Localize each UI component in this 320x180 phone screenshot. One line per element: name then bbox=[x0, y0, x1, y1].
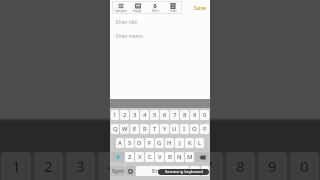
button[interactable]: U bbox=[170, 124, 179, 134]
staticText: M bbox=[187, 153, 193, 161]
button[interactable]: C bbox=[145, 152, 154, 162]
button[interactable]: Scale bbox=[164, 1, 182, 14]
button[interactable]: G bbox=[155, 138, 164, 148]
button[interactable]: T bbox=[150, 124, 159, 134]
staticText: U bbox=[172, 125, 177, 133]
staticText: N bbox=[177, 153, 182, 161]
button[interactable]: Q bbox=[111, 124, 119, 134]
button[interactable]: 1 bbox=[111, 110, 119, 120]
staticText: W bbox=[122, 125, 128, 133]
button[interactable]: S bbox=[125, 138, 134, 148]
button[interactable]: English bbox=[136, 166, 189, 176]
button[interactable]: K bbox=[185, 138, 194, 148]
button[interactable]: 8 bbox=[180, 110, 189, 120]
staticText: English bbox=[152, 167, 173, 175]
staticText: Enter title bbox=[116, 19, 138, 25]
staticText: Image bbox=[133, 9, 142, 13]
button[interactable]: . bbox=[190, 166, 200, 176]
button[interactable]: M bbox=[185, 152, 194, 162]
staticText: R bbox=[143, 125, 147, 133]
button[interactable]: 6 bbox=[160, 110, 169, 120]
staticText: 9 bbox=[193, 111, 197, 119]
button[interactable]: F bbox=[145, 138, 154, 148]
staticText: D bbox=[137, 139, 142, 147]
staticText: F bbox=[148, 139, 152, 147]
button[interactable]: N bbox=[175, 152, 184, 162]
staticText: B bbox=[168, 153, 172, 161]
button[interactable]: 9 bbox=[190, 110, 199, 120]
button[interactable]: B bbox=[165, 152, 174, 162]
staticText: 7 bbox=[173, 111, 177, 119]
staticText: H bbox=[167, 139, 172, 147]
button[interactable]: 5 bbox=[150, 110, 159, 120]
button[interactable]: Y bbox=[160, 124, 169, 134]
staticText: 0 bbox=[203, 111, 207, 119]
staticText: V bbox=[158, 153, 162, 161]
staticText: X bbox=[138, 153, 142, 161]
button[interactable]: Settings bbox=[126, 166, 135, 176]
staticText: Samsung keyboard bbox=[165, 169, 203, 175]
button[interactable]: Image bbox=[129, 1, 146, 14]
button[interactable]: Z bbox=[125, 152, 134, 162]
staticText: Scale bbox=[170, 9, 177, 13]
staticText: S bbox=[128, 139, 132, 147]
button[interactable]: 3 bbox=[130, 110, 139, 120]
button[interactable]: P bbox=[200, 124, 209, 134]
staticText: Save bbox=[194, 4, 207, 11]
button[interactable]: Voice bbox=[146, 1, 164, 14]
staticText: Q bbox=[113, 125, 118, 133]
button[interactable]: X bbox=[135, 152, 144, 162]
staticText: 2 bbox=[123, 111, 127, 119]
button[interactable]: Shift bbox=[111, 152, 124, 162]
staticText: Sym bbox=[112, 167, 124, 175]
button[interactable]: D bbox=[135, 138, 144, 148]
staticText: 4 bbox=[108, 156, 117, 176]
staticText: 7 bbox=[204, 156, 213, 176]
staticText: O bbox=[192, 125, 197, 133]
staticText: P bbox=[203, 125, 207, 133]
staticText: Category bbox=[115, 9, 127, 13]
button[interactable]: H bbox=[165, 138, 174, 148]
staticText: K bbox=[188, 139, 192, 147]
button[interactable]: Enter bbox=[201, 166, 209, 176]
button[interactable]: I bbox=[180, 124, 189, 134]
staticText: 5 bbox=[153, 111, 157, 119]
staticText: 8 bbox=[183, 111, 187, 119]
button[interactable]: A bbox=[116, 138, 124, 148]
staticText: 2 bbox=[44, 156, 53, 176]
staticText: 3 bbox=[76, 156, 85, 176]
staticText: T bbox=[153, 125, 157, 133]
button[interactable]: 2 bbox=[120, 110, 129, 120]
staticText: C bbox=[148, 153, 152, 161]
staticText: 1 bbox=[12, 156, 21, 176]
button[interactable]: Save bbox=[182, 1, 210, 14]
staticText: 3 bbox=[133, 111, 137, 119]
button[interactable]: 0 bbox=[200, 110, 209, 120]
staticText: 9 bbox=[268, 156, 277, 176]
button[interactable]: V bbox=[155, 152, 164, 162]
button[interactable]: W bbox=[120, 124, 129, 134]
staticText: A bbox=[118, 139, 122, 147]
button[interactable]: O bbox=[190, 124, 199, 134]
staticText: Y bbox=[163, 125, 167, 133]
staticText: G bbox=[157, 139, 162, 147]
button[interactable]: R bbox=[140, 124, 149, 134]
staticText: I bbox=[183, 125, 186, 133]
button[interactable]: L bbox=[195, 138, 204, 148]
staticText: J bbox=[179, 139, 181, 147]
staticText: Enter memo bbox=[116, 33, 143, 39]
staticText: 6 bbox=[172, 156, 181, 176]
button[interactable]: Category bbox=[112, 1, 129, 14]
button[interactable]: 4 bbox=[140, 110, 149, 120]
staticText: 0 bbox=[300, 156, 309, 176]
button[interactable]: 7 bbox=[170, 110, 179, 120]
staticText: E bbox=[133, 125, 137, 133]
staticText: 8 bbox=[236, 156, 245, 176]
staticText: 4 bbox=[143, 111, 147, 119]
staticText: Z bbox=[128, 153, 132, 161]
button[interactable]: Sym bbox=[111, 166, 125, 176]
button[interactable]: Delete bbox=[195, 152, 209, 162]
button[interactable]: J bbox=[175, 138, 184, 148]
button[interactable]: E bbox=[130, 124, 139, 134]
staticText: L bbox=[198, 139, 202, 147]
